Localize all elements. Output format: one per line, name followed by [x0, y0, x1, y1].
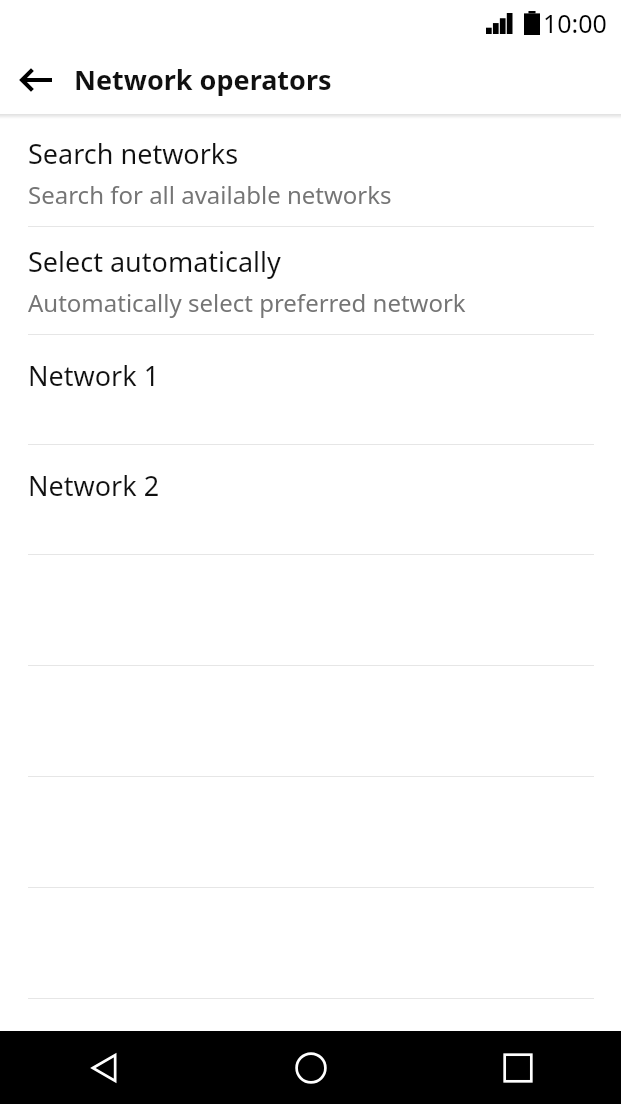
button[interactable]: Network 2 — [0, 445, 621, 554]
staticText: 10:00 — [543, 6, 607, 40]
button[interactable]: Back — [0, 1031, 207, 1104]
button[interactable]: Network 1 — [0, 335, 621, 444]
staticText: Select automatically — [28, 243, 281, 280]
staticText: Network 2 — [28, 467, 160, 504]
staticText: Search for all available networks — [28, 178, 392, 211]
staticText: Network operators — [74, 61, 332, 98]
staticText: Search networks — [28, 135, 239, 172]
button[interactable]: Home — [207, 1031, 414, 1104]
button[interactable]: Back — [8, 52, 64, 108]
staticText: Automatically select preferred network — [28, 286, 466, 319]
button[interactable]: Recents — [414, 1031, 621, 1104]
button[interactable]: Search networks — [0, 119, 621, 226]
button[interactable]: Select automatically — [0, 227, 621, 334]
staticText: Network 1 — [28, 357, 160, 394]
